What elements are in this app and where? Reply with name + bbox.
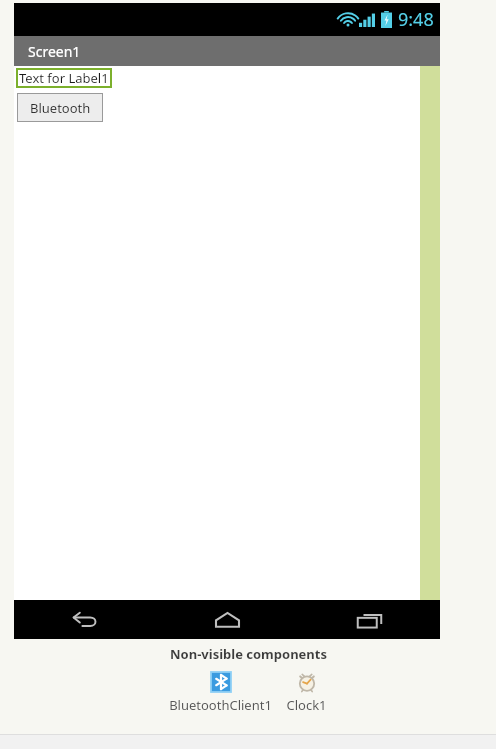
staticText: Clock1: [286, 696, 327, 714]
button[interactable]: BluetoothClient1: [169, 672, 272, 714]
button[interactable]: Text for Label1: [16, 68, 112, 88]
button[interactable]: Clock1: [286, 672, 327, 714]
button[interactable]: Screen1: [14, 36, 440, 66]
button[interactable]: Back: [14, 600, 156, 639]
staticText: Text for Label1: [19, 69, 109, 87]
button[interactable]: Bluetooth: [17, 93, 103, 122]
staticText: BluetoothClient1: [169, 696, 272, 714]
staticText: 9:48: [398, 7, 434, 32]
staticText: Screen1: [28, 42, 81, 61]
staticText: Bluetooth: [30, 99, 91, 117]
button[interactable]: Recent apps: [298, 600, 440, 639]
button[interactable]: Home: [156, 600, 298, 639]
staticText: Non-visible components: [170, 645, 327, 663]
